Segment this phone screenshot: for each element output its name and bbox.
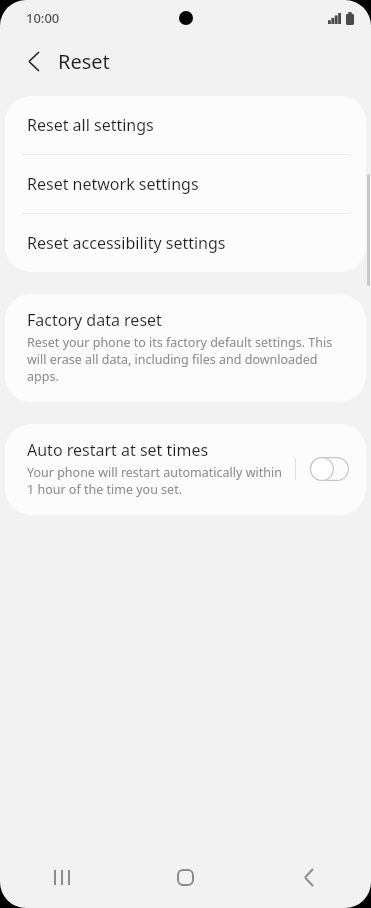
button[interactable]: Factory data reset [5, 294, 366, 402]
button[interactable]: Reset accessibility settings [5, 214, 366, 272]
button[interactable]: Auto restart at set times [27, 439, 293, 498]
staticText: Reset all settings [27, 114, 154, 136]
button[interactable]: Recent apps [0, 846, 123, 908]
staticText: Factory data reset [27, 309, 162, 331]
staticText: Reset accessibility settings [27, 232, 226, 254]
button[interactable]: Reset network settings [5, 155, 366, 213]
staticText: Your phone will restart automatically wi… [27, 464, 287, 498]
button[interactable]: Navigate up [12, 40, 54, 82]
button[interactable]: Reset all settings [5, 96, 366, 154]
button[interactable]: Auto restart at set times [308, 452, 350, 486]
staticText: Reset [58, 48, 110, 75]
staticText: 10:00 [26, 9, 60, 27]
staticText: Auto restart at set times [27, 439, 209, 461]
button[interactable]: Back [247, 846, 371, 908]
staticText: Reset network settings [27, 173, 199, 195]
staticText: Reset your phone to its factory default … [27, 334, 344, 385]
button[interactable]: Home [123, 846, 247, 908]
